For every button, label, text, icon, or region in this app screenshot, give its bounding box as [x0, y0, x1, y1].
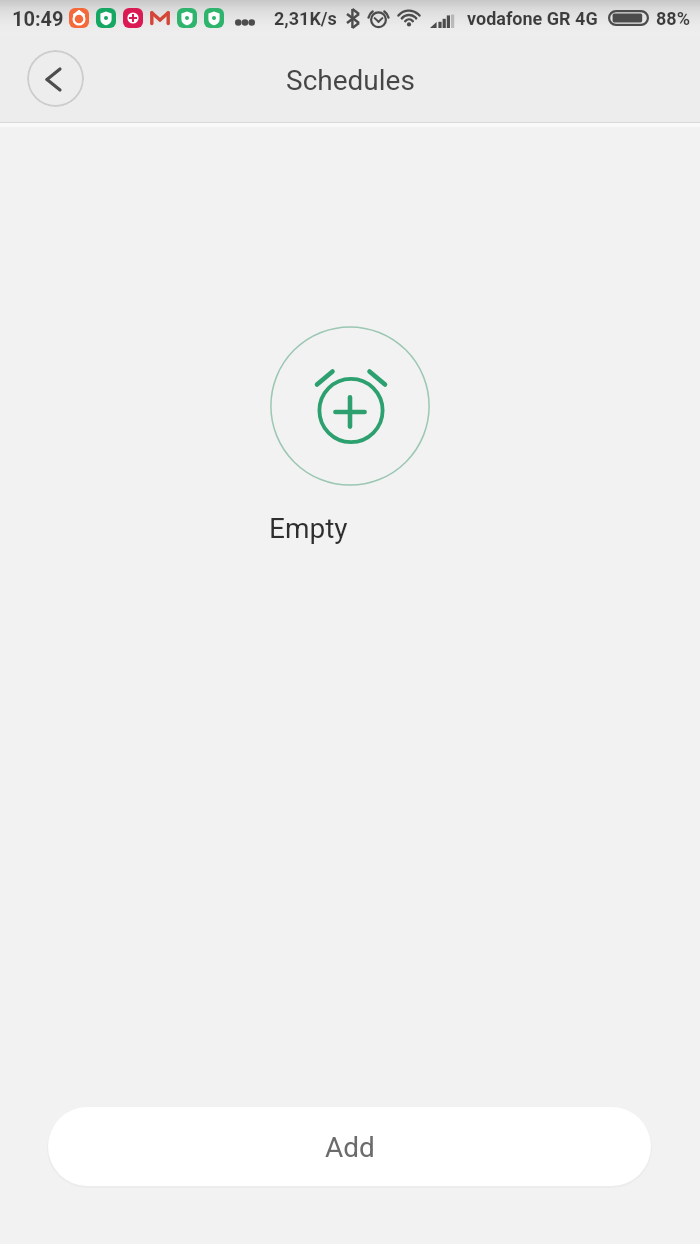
- button[interactable]: Add schedule: [270, 326, 430, 486]
- button[interactable]: Back: [27, 50, 84, 107]
- staticText: Empty: [269, 512, 348, 545]
- staticText: Add: [325, 1131, 375, 1164]
- button[interactable]: Add: [48, 1107, 651, 1186]
- staticText: vodafone GR 4G: [467, 8, 598, 29]
- staticText: Schedules: [286, 64, 415, 97]
- staticText: 88%: [656, 8, 690, 29]
- staticText: 10:49: [12, 7, 64, 30]
- staticText: 2,31K/s: [274, 8, 337, 29]
